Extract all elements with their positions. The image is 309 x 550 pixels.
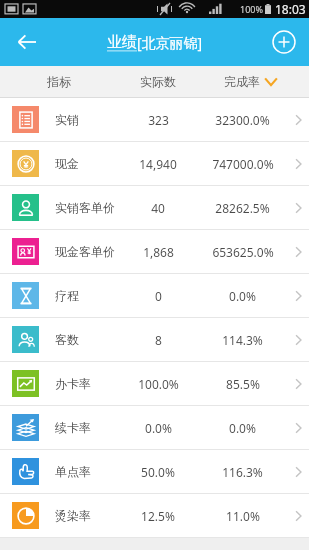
button[interactable]: Back xyxy=(10,25,44,59)
staticText: 实际数 xyxy=(140,74,176,89)
staticText: 32300.0% xyxy=(215,112,270,128)
button[interactable]: 续卡率 xyxy=(0,406,309,450)
staticText: 14,940 xyxy=(139,156,177,172)
button[interactable]: 现金 xyxy=(0,142,309,186)
staticText: 0.0% xyxy=(145,420,172,436)
staticText: 实销客单价 xyxy=(55,200,115,215)
staticText: 12.5% xyxy=(141,508,175,524)
button[interactable]: 疗程 xyxy=(0,274,309,318)
staticText: 28262.5% xyxy=(215,200,270,216)
staticText: 653625.0% xyxy=(212,244,274,260)
button[interactable]: 完成率 xyxy=(224,74,278,89)
button[interactable]: 客数 xyxy=(0,318,309,362)
staticText: 50.0% xyxy=(141,464,175,480)
staticText: 1,868 xyxy=(143,244,174,260)
staticText: 现金客单价 xyxy=(55,244,115,259)
staticText: [北京丽锦] xyxy=(137,33,203,52)
staticText: 单点率 xyxy=(55,464,91,479)
staticText: 0 xyxy=(155,288,162,304)
staticText: 18:03 xyxy=(275,1,306,17)
staticText: 指标 xyxy=(47,74,71,89)
staticText: 完成率 xyxy=(224,74,260,89)
button[interactable]: 单点率 xyxy=(0,450,309,494)
staticText: 0.0% xyxy=(229,288,256,304)
staticText: 323 xyxy=(148,112,169,128)
staticText: 11.0% xyxy=(226,508,260,524)
staticText: 续卡率 xyxy=(55,420,91,435)
staticText: 114.3% xyxy=(222,332,263,348)
staticText: 100% xyxy=(240,3,263,15)
button[interactable]: 烫染率 xyxy=(0,494,309,538)
staticText: 116.3% xyxy=(222,464,263,480)
staticText: 业绩 xyxy=(107,33,137,52)
staticText: 100.0% xyxy=(138,376,179,392)
staticText: 747000.0% xyxy=(212,156,274,172)
button[interactable]: 实销 xyxy=(0,98,309,142)
staticText: 8 xyxy=(155,332,162,348)
button[interactable]: 办卡率 xyxy=(0,362,309,406)
staticText: 0.0% xyxy=(229,420,256,436)
staticText: 40 xyxy=(151,200,165,216)
staticText: 疗程 xyxy=(55,288,79,303)
button[interactable]: 现金客单价 xyxy=(0,230,309,274)
staticText: 烫染率 xyxy=(55,508,91,523)
staticText: 85.5% xyxy=(226,376,260,392)
staticText: 实销 xyxy=(55,112,79,127)
staticText: 现金 xyxy=(55,156,79,171)
button[interactable]: 实销客单价 xyxy=(0,186,309,230)
button[interactable]: Add xyxy=(267,25,301,59)
staticText: 办卡率 xyxy=(55,376,91,391)
staticText: 客数 xyxy=(55,332,79,347)
